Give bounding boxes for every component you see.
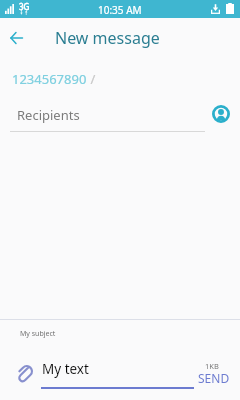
staticText: My subject: [20, 329, 56, 339]
staticText: /: [87, 70, 96, 88]
button[interactable]: 1KB: [194, 360, 234, 386]
staticText: 3G: [19, 1, 30, 12]
staticText: Recipients: [17, 106, 80, 124]
staticText: SEND: [198, 370, 230, 386]
staticText: 1234567890: [12, 70, 87, 88]
staticText: 1KB: [205, 361, 219, 371]
button[interactable]: Attach file: [10, 358, 39, 387]
button[interactable]: Add recipient from contacts: [210, 103, 231, 124]
staticText: New message: [55, 27, 160, 49]
staticText: My text: [42, 360, 89, 378]
button[interactable]: Back: [3, 25, 30, 51]
staticText: 10:35 AM: [98, 3, 142, 17]
